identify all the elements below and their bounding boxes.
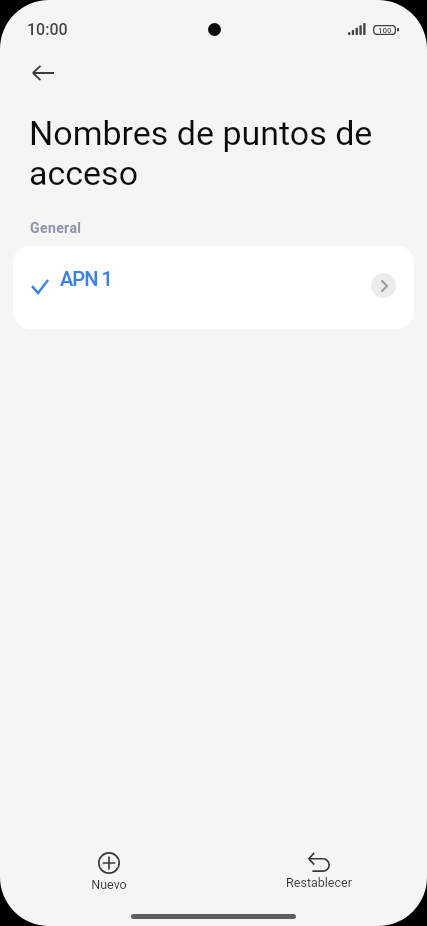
staticText: Nombres de puntos de acceso [29,113,387,193]
staticText: Nuevo [91,877,127,892]
button[interactable]: Back [20,50,66,96]
staticText: Restablecer [286,875,352,890]
staticText: 10:00 [27,20,68,39]
button[interactable]: Nuevo [69,846,149,898]
staticText: General [30,220,82,236]
button[interactable]: Restablecer [269,846,369,898]
staticText: APN 1 [60,267,112,290]
button[interactable]: Open APN 1 details [371,273,396,298]
staticText: 100 [378,26,392,35]
button[interactable]: APN 1 [13,246,414,329]
